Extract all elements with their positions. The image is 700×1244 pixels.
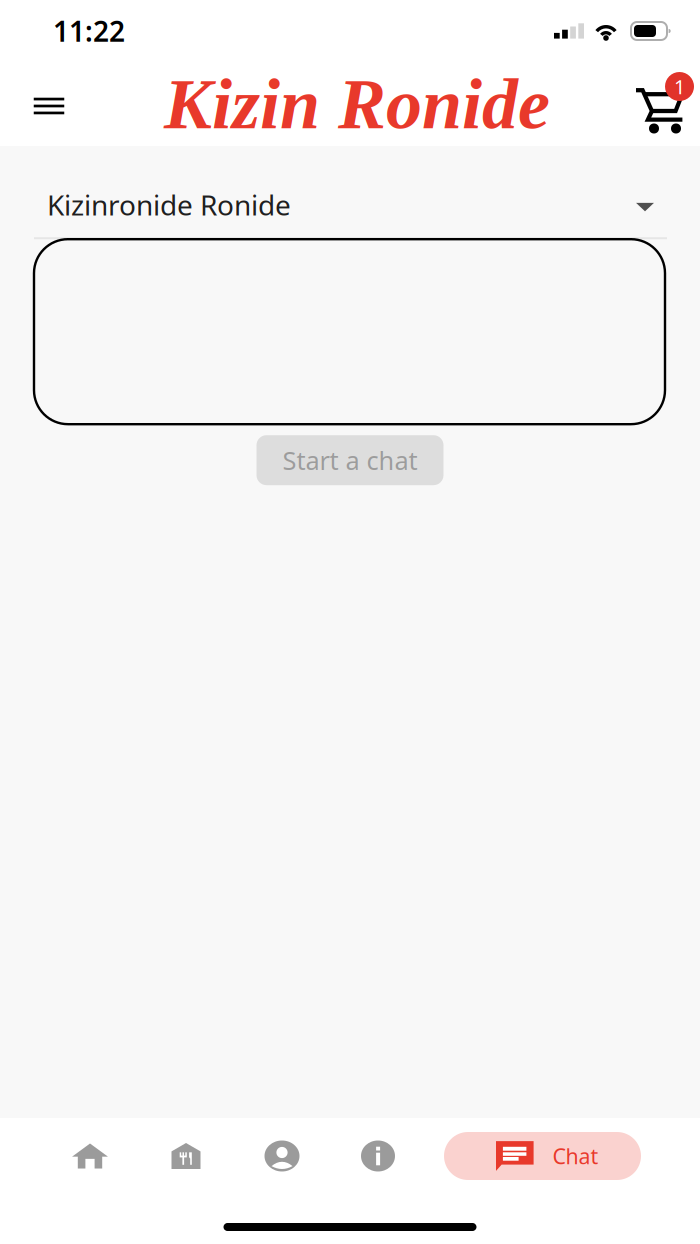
button[interactable]: Start a chat [256,435,443,485]
button[interactable]: Information [330,1124,426,1188]
button[interactable]: Chat [444,1132,641,1180]
staticText: Start a chat [282,443,417,477]
button[interactable]: Kizinronide Ronide [0,146,700,239]
staticText: Chat [553,1142,599,1170]
staticText: Kizinronide Ronide [47,186,291,223]
staticText: 1 [674,73,685,100]
button[interactable]: Menu [18,62,80,146]
button[interactable]: Account [234,1124,330,1188]
button[interactable]: Home [42,1124,138,1188]
button[interactable]: Shopping cart, 1 item [634,62,696,146]
staticText: Kizin Ronide [164,64,550,144]
button[interactable]: Restaurants [138,1124,234,1188]
staticText: 11:22 [53,12,125,50]
